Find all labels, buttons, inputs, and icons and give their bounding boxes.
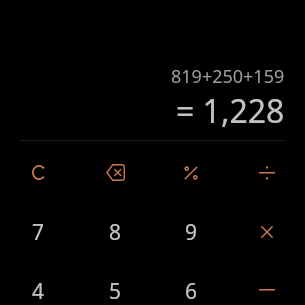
button[interactable]: Multiply [229,203,305,262]
button[interactable]: Subtract [229,262,305,305]
button[interactable]: 4 [0,262,77,305]
button[interactable]: Clear [0,143,77,202]
button[interactable]: 7 [0,203,77,262]
button[interactable]: 8 [77,203,153,262]
staticText: 4 [32,277,45,305]
button[interactable]: Percent [153,143,229,202]
button[interactable]: Divide [229,143,305,202]
staticText: 5 [109,277,122,305]
staticText: 7 [32,218,45,247]
button[interactable]: Backspace [77,143,153,202]
button[interactable]: 5 [77,262,153,305]
button[interactable]: 9 [153,203,229,262]
staticText: = 1,228 [176,89,285,133]
button[interactable]: 6 [153,262,229,305]
staticText: 8 [109,218,122,247]
staticText: 6 [185,277,198,305]
staticText: 819+250+159 [171,64,285,89]
staticText: 9 [185,218,198,247]
